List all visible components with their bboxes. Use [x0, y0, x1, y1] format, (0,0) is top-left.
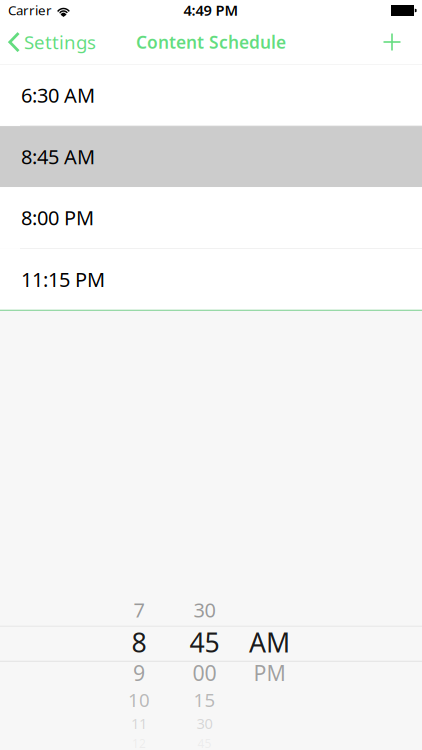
- staticText: 8: [131, 624, 146, 660]
- staticText: 45: [197, 735, 211, 750]
- staticText: 30: [196, 713, 212, 733]
- staticText: 30: [193, 596, 215, 623]
- staticText: 10: [128, 687, 150, 712]
- staticText: PM: [253, 659, 285, 687]
- staticText: 45: [189, 624, 219, 660]
- button[interactable]: 8:00 PM: [0, 187, 422, 248]
- staticText: Settings: [24, 30, 96, 54]
- staticText: 9: [133, 659, 145, 687]
- staticText: 11: [131, 713, 147, 733]
- button[interactable]: 6:30 AM: [0, 64, 422, 125]
- staticText: AM: [249, 624, 290, 660]
- button[interactable]: Add schedule: [362, 20, 422, 64]
- staticText: 11:15 PM: [21, 266, 105, 292]
- staticText: 15: [193, 687, 215, 712]
- staticText: 6:30 AM: [21, 82, 95, 108]
- staticText: Content Schedule: [136, 30, 286, 53]
- staticText: 7: [133, 596, 144, 623]
- staticText: 4:49 PM: [183, 0, 238, 20]
- button[interactable]: 11:15 PM: [0, 249, 422, 310]
- button[interactable]: Settings: [0, 20, 120, 64]
- staticText: 12: [132, 735, 146, 750]
- staticText: 8:00 PM: [21, 204, 94, 231]
- button[interactable]: 8:45 AM: [0, 126, 422, 187]
- staticText: Carrier: [8, 1, 52, 19]
- staticText: 8:45 AM: [21, 143, 95, 170]
- staticText: 00: [192, 659, 216, 687]
